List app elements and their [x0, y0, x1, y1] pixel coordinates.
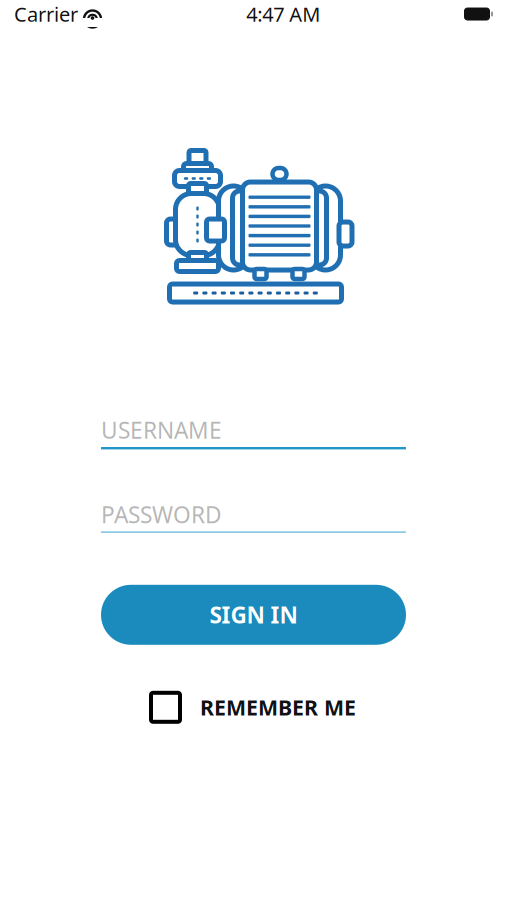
staticText: USERNAME	[101, 415, 222, 445]
staticText: REMEMBER ME	[200, 693, 356, 721]
button[interactable]: REMEMBER ME	[145, 687, 362, 728]
staticText: PASSWORD	[101, 499, 222, 529]
staticText: Carrier	[14, 1, 78, 27]
staticText: 4:47 AM	[246, 1, 320, 27]
staticText: SIGN IN	[209, 600, 297, 630]
button[interactable]: SIGN IN	[101, 585, 406, 645]
